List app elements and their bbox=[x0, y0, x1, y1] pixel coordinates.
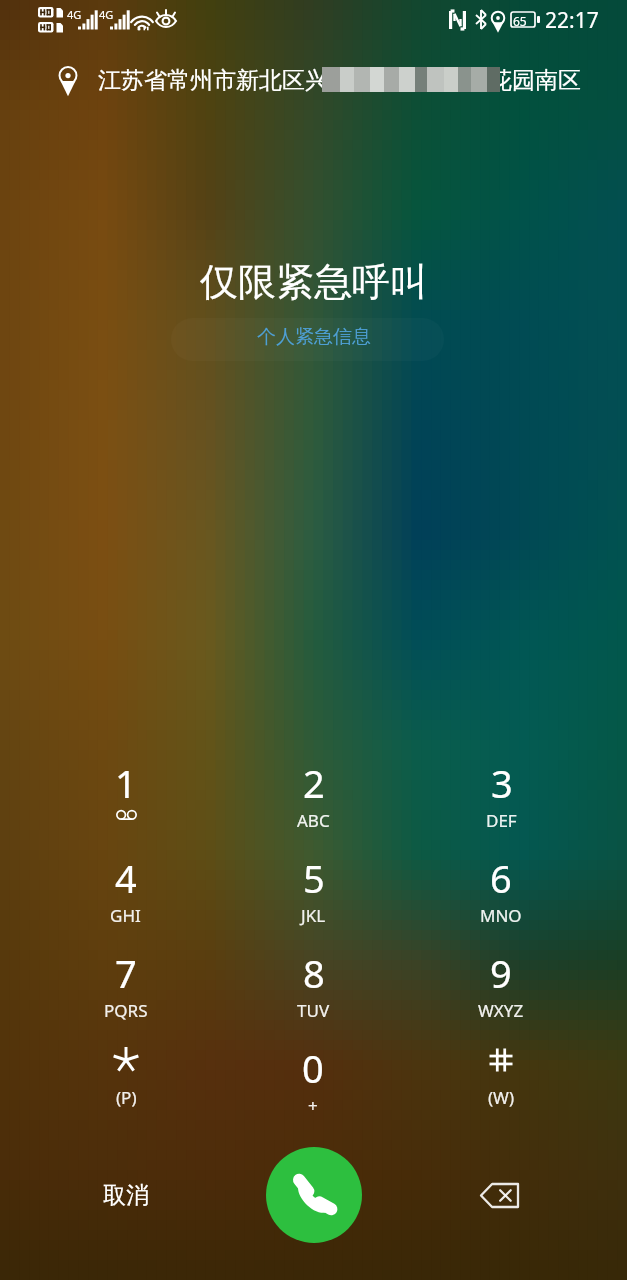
staticText: 2 bbox=[303, 757, 325, 809]
button[interactable]: 2 bbox=[219, 743, 407, 838]
staticText: PQRS bbox=[104, 999, 148, 1022]
button[interactable]: 5 bbox=[219, 838, 407, 933]
staticText: TUV bbox=[297, 999, 330, 1022]
button[interactable]: 7 bbox=[32, 933, 219, 1028]
staticText: 9 bbox=[490, 947, 512, 999]
staticText: 江苏省常州市新北区兴隆路南华苑小区花园南区 bbox=[98, 66, 581, 95]
staticText: 8 bbox=[303, 947, 325, 999]
staticText: 仅限紧急呼叫 bbox=[200, 258, 428, 306]
staticText: DEF bbox=[486, 809, 517, 832]
button[interactable]: 3 bbox=[407, 743, 595, 838]
staticText: 7 bbox=[115, 947, 137, 999]
button[interactable]: 0 bbox=[219, 1028, 407, 1123]
button[interactable]: 个人紧急信息 bbox=[231, 318, 397, 356]
button[interactable]: 8 bbox=[219, 933, 407, 1028]
staticText: ABC bbox=[297, 809, 330, 832]
staticText: 5 bbox=[303, 852, 325, 904]
staticText: 1 bbox=[115, 757, 137, 809]
button[interactable]: 取消 bbox=[89, 1169, 163, 1222]
staticText: WXYZ bbox=[478, 999, 524, 1022]
button[interactable]: (W) bbox=[407, 1028, 595, 1123]
staticText: 22:17 bbox=[545, 6, 599, 35]
button[interactable]: Call bbox=[266, 1147, 362, 1243]
staticText: 取消 bbox=[103, 1181, 149, 1210]
staticText: (P) bbox=[116, 1086, 137, 1109]
button[interactable]: 4 bbox=[32, 838, 219, 933]
staticText: 个人紧急信息 bbox=[257, 325, 371, 349]
staticText: (W) bbox=[488, 1086, 515, 1109]
button[interactable]: 1 bbox=[32, 743, 219, 838]
button[interactable]: 9 bbox=[407, 933, 595, 1028]
staticText: 6 bbox=[490, 852, 512, 904]
staticText: + bbox=[308, 1094, 318, 1117]
button[interactable]: (P) bbox=[32, 1028, 219, 1123]
button[interactable]: 6 bbox=[407, 838, 595, 933]
staticText: 4G bbox=[67, 7, 82, 22]
staticText: JKL bbox=[301, 904, 326, 927]
staticText: 0 bbox=[302, 1042, 324, 1094]
staticText: 65 bbox=[513, 13, 527, 29]
staticText: 4 bbox=[115, 852, 137, 904]
staticText: 4G bbox=[99, 7, 114, 22]
staticText: MNO bbox=[480, 904, 522, 927]
button[interactable]: Backspace bbox=[471, 1167, 527, 1223]
staticText: 3 bbox=[491, 757, 513, 809]
staticText: GHI bbox=[110, 904, 141, 927]
